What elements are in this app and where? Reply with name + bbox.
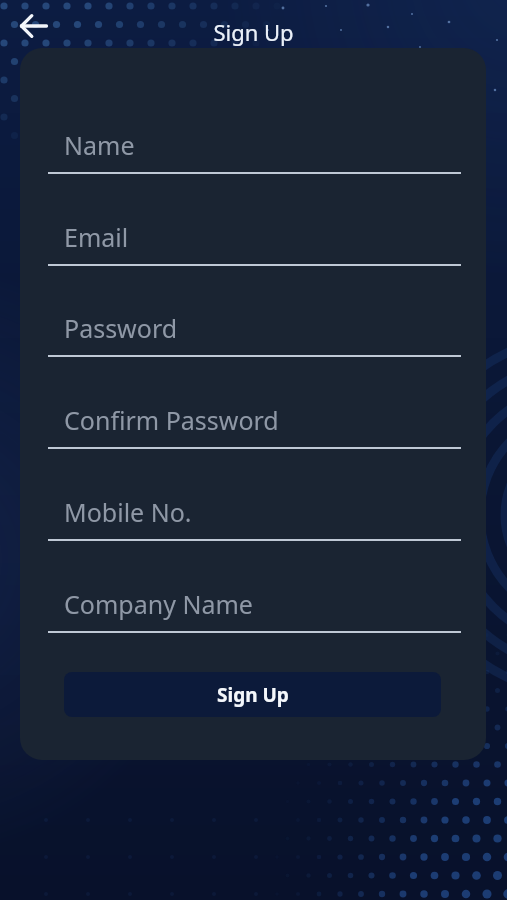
- staticText: Confirm Password: [64, 403, 279, 437]
- button[interactable]: Company Name: [48, 587, 461, 633]
- staticText: Name: [64, 128, 135, 162]
- button[interactable]: Email: [48, 220, 461, 266]
- staticText: Email: [64, 220, 129, 254]
- staticText: Sign Up: [0, 17, 507, 47]
- button[interactable]: Confirm Password: [48, 403, 461, 449]
- button[interactable]: Sign Up: [64, 672, 441, 717]
- staticText: Password: [64, 311, 178, 345]
- button[interactable]: Name: [48, 128, 461, 174]
- button[interactable]: [14, 6, 54, 46]
- staticText: Sign Up: [217, 682, 289, 708]
- button[interactable]: Mobile No.: [48, 495, 461, 541]
- staticText: Mobile No.: [64, 495, 192, 529]
- button[interactable]: Password: [48, 311, 461, 357]
- staticText: Company Name: [64, 587, 253, 621]
